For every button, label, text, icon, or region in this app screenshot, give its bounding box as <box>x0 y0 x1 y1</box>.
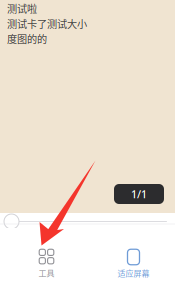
staticText: 测试啦 <box>7 1 37 16</box>
staticText: 适应屏幕 <box>117 267 149 279</box>
button[interactable]: 适应屏幕 <box>90 249 175 279</box>
staticText: 工具 <box>38 267 54 278</box>
staticText: 度图的的 <box>7 31 47 46</box>
staticText: 测试卡了测试大小 <box>7 16 87 31</box>
staticText: 1/1 <box>131 187 147 201</box>
button[interactable]: 工具 <box>2 249 90 279</box>
